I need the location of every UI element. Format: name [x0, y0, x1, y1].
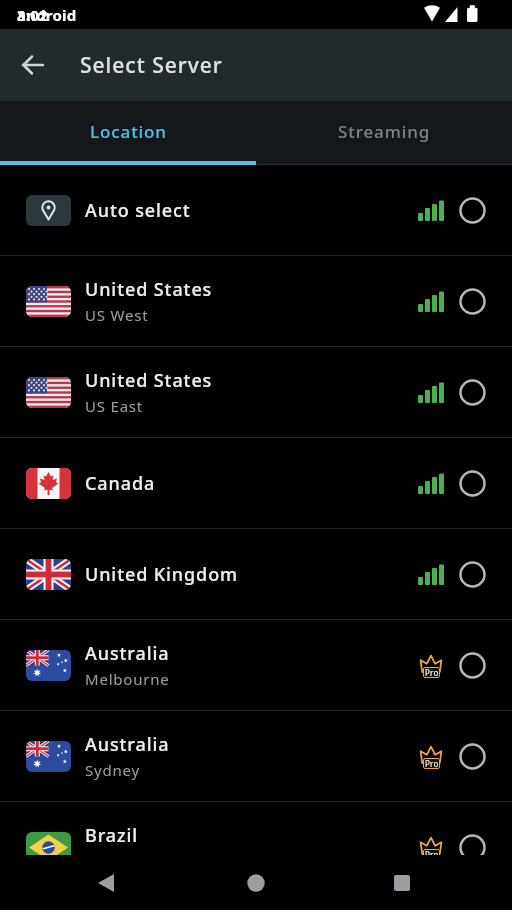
staticText: Melbourne	[85, 669, 170, 689]
staticText: Australia	[85, 641, 170, 666]
button[interactable]: Location	[0, 101, 256, 161]
staticText: Canada	[85, 471, 156, 496]
button[interactable]: United States	[0, 347, 512, 437]
staticText: Sydney	[85, 760, 140, 780]
staticText: 3:02	[17, 5, 48, 25]
staticText: United Kingdom	[85, 562, 238, 587]
staticText: US East	[85, 396, 144, 416]
staticText: Auto select	[85, 198, 191, 223]
staticText: United States	[85, 368, 213, 393]
staticText: android	[17, 5, 77, 25]
button[interactable]: Australia	[0, 711, 512, 801]
staticText: Pro	[425, 849, 439, 860]
button[interactable]	[378, 855, 426, 910]
staticText: US West	[85, 305, 149, 325]
staticText: Australia	[85, 732, 170, 757]
button[interactable]	[9, 41, 57, 89]
staticText: Location	[90, 120, 167, 143]
button[interactable]: Streaming	[256, 101, 512, 161]
button[interactable]: United Kingdom	[0, 529, 512, 619]
button[interactable]: Auto select	[0, 165, 512, 255]
staticText: Streaming	[338, 120, 431, 143]
button[interactable]	[82, 855, 130, 910]
staticText: Select Server	[80, 51, 223, 80]
button[interactable]	[232, 855, 280, 910]
button[interactable]: Australia	[0, 620, 512, 710]
staticText: Brazil	[85, 823, 139, 848]
button[interactable]: Brazil	[0, 802, 512, 892]
staticText: United States	[85, 277, 213, 302]
button[interactable]: United States	[0, 256, 512, 346]
staticText: Pro	[425, 667, 439, 678]
staticText: Pro	[425, 758, 439, 769]
button[interactable]: Canada	[0, 438, 512, 528]
